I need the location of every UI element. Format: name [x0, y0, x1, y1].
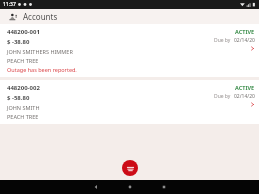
- staticText: $ -58.80: [7, 94, 30, 102]
- staticText: JOHN SMITH: [7, 104, 40, 111]
- button[interactable]: 448200-002: [0, 80, 259, 124]
- staticText: Outage has been reported.: [7, 66, 77, 73]
- staticText: 02/14/20: [234, 93, 255, 100]
- staticText: PEACH TREE: [7, 113, 39, 120]
- staticText: Due by: [214, 93, 231, 100]
- staticText: 448200-002: [7, 84, 40, 92]
- staticText: Accounts: [23, 11, 58, 22]
- button[interactable]: Home: [119, 180, 141, 194]
- button[interactable]: Recent apps: [153, 180, 175, 194]
- staticText: ACTIVE: [235, 84, 255, 91]
- staticText: 11:37: [3, 1, 16, 8]
- button[interactable]: Accounts: [7, 11, 18, 22]
- staticText: JOHN SMITHERS HIMMER: [7, 48, 73, 55]
- staticText: 448200-001: [7, 28, 40, 36]
- staticText: 02/14/20: [234, 37, 255, 44]
- button[interactable]: Back: [85, 180, 107, 194]
- staticText: PEACH TREE: [7, 57, 39, 64]
- staticText: ACTIVE: [235, 28, 255, 35]
- staticText: $ -38.80: [7, 38, 30, 46]
- button[interactable]: Report outage: [122, 160, 138, 176]
- staticText: Due by: [214, 37, 231, 44]
- button[interactable]: 448200-001: [0, 24, 259, 77]
